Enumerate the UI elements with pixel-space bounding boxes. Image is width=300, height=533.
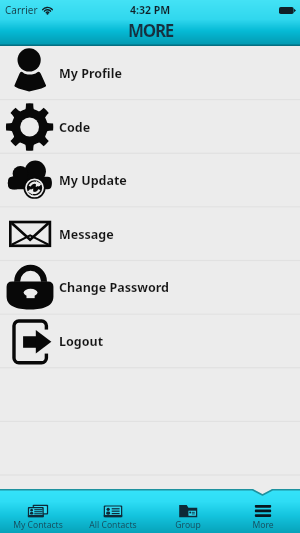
staticText: My Update <box>59 172 127 189</box>
staticText: Carrier <box>5 3 38 17</box>
button[interactable]: My Update <box>0 153 300 207</box>
staticText: Logout <box>59 333 104 350</box>
staticText: More <box>252 519 274 531</box>
staticText: All Contacts <box>89 519 137 531</box>
button[interactable]: Message <box>0 207 300 261</box>
button[interactable]: More <box>225 489 300 533</box>
button[interactable]: Code <box>0 100 300 154</box>
staticText: 4:32 PM <box>130 3 171 17</box>
staticText: Change Password <box>59 279 169 296</box>
staticText: Code <box>59 119 91 136</box>
button[interactable]: Change Password <box>0 260 300 314</box>
staticText: Message <box>59 226 114 243</box>
button[interactable]: Logout <box>0 314 300 368</box>
staticText: My Profile <box>59 65 122 82</box>
staticText: MORE <box>128 19 173 42</box>
button[interactable]: Group <box>150 489 225 533</box>
button[interactable]: My Contacts <box>0 489 75 533</box>
staticText: My Contacts <box>13 519 63 531</box>
button[interactable]: All Contacts <box>75 489 150 533</box>
button[interactable]: My Profile <box>0 46 300 100</box>
staticText: Group <box>175 519 201 531</box>
